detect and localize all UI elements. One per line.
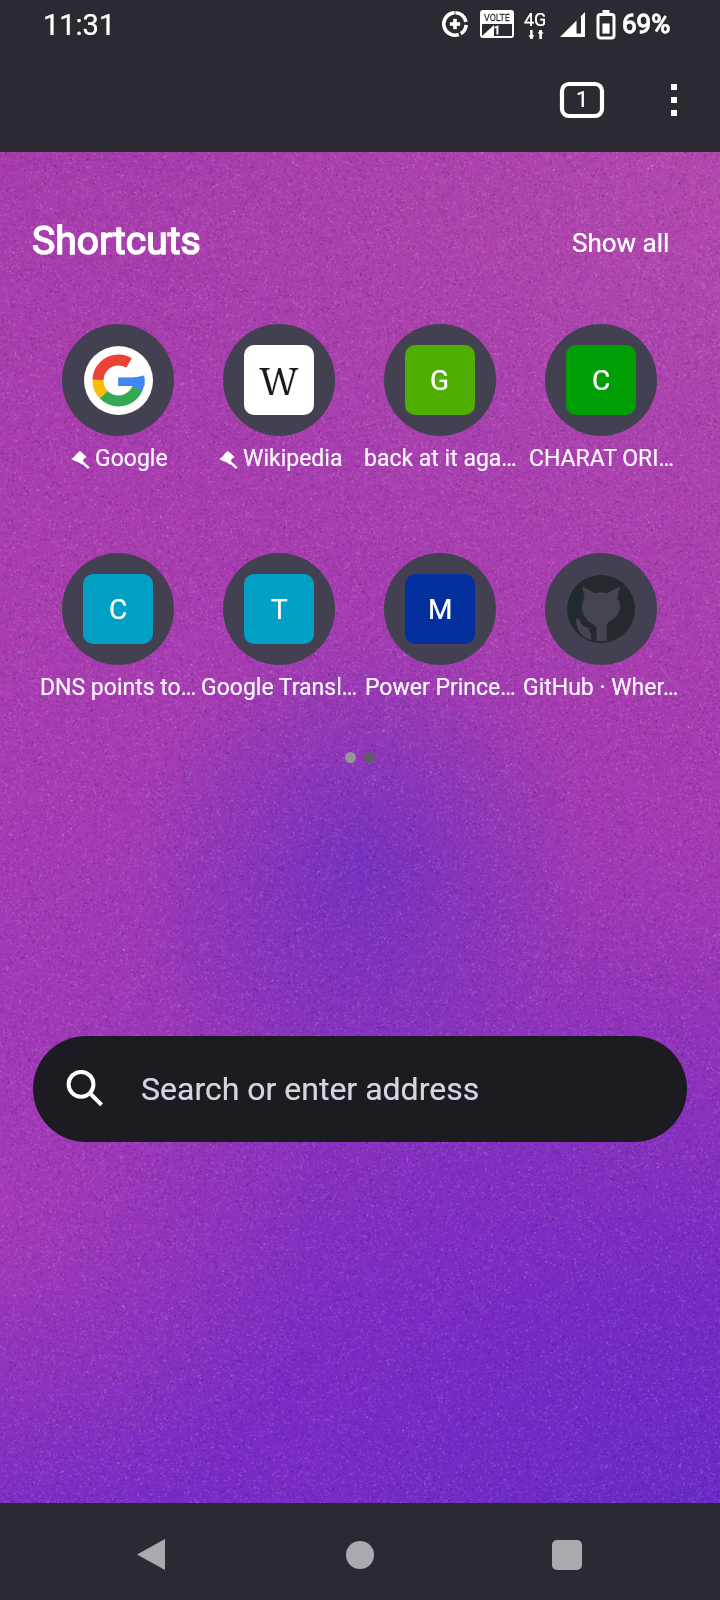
button[interactable]: Show all	[572, 228, 670, 258]
staticText: Search or enter address	[141, 1070, 480, 1108]
staticText: Google Transl…	[201, 674, 358, 701]
staticText: 69%	[622, 9, 671, 39]
staticText: VOLTE	[484, 13, 510, 24]
button[interactable]: Google	[37, 324, 199, 474]
staticText: C	[592, 364, 611, 397]
staticText: M	[428, 593, 453, 626]
button[interactable]: Search or enter address	[33, 1036, 687, 1142]
staticText: CHARAT ORI…	[529, 445, 674, 472]
staticText: Power Prince…	[365, 674, 516, 701]
staticText: 4G	[524, 9, 547, 30]
staticText: Google	[95, 445, 168, 472]
button[interactable]: Home	[320, 1517, 400, 1592]
button[interactable]: Back	[111, 1517, 191, 1592]
button[interactable]: Recents	[527, 1517, 607, 1592]
button[interactable]: G	[359, 324, 521, 474]
button[interactable]: C	[37, 553, 199, 703]
button[interactable]: More options	[638, 64, 710, 136]
staticText: Wikipedia	[243, 445, 343, 472]
button[interactable]: C	[520, 324, 682, 474]
staticText: T	[271, 593, 288, 626]
staticText: G	[430, 364, 450, 397]
button[interactable]: GitHub · Wher…	[520, 553, 682, 703]
button[interactable]: W	[198, 324, 360, 474]
button[interactable]: Shortcuts	[32, 218, 201, 264]
staticText: back at it aga…	[364, 445, 517, 472]
button[interactable]: T	[198, 553, 360, 703]
button[interactable]: Tabs	[546, 64, 618, 136]
staticText: Show all	[572, 228, 670, 258]
staticText: Shortcuts	[32, 218, 201, 264]
button[interactable]: M	[359, 553, 521, 703]
staticText: 1	[494, 24, 501, 36]
staticText: DNS points to…	[40, 674, 197, 701]
staticText: GitHub · Wher…	[523, 674, 679, 701]
staticText: 11:31	[43, 8, 116, 42]
staticText: C	[109, 593, 128, 626]
staticText: 1	[576, 87, 589, 113]
staticText: W	[259, 354, 299, 406]
